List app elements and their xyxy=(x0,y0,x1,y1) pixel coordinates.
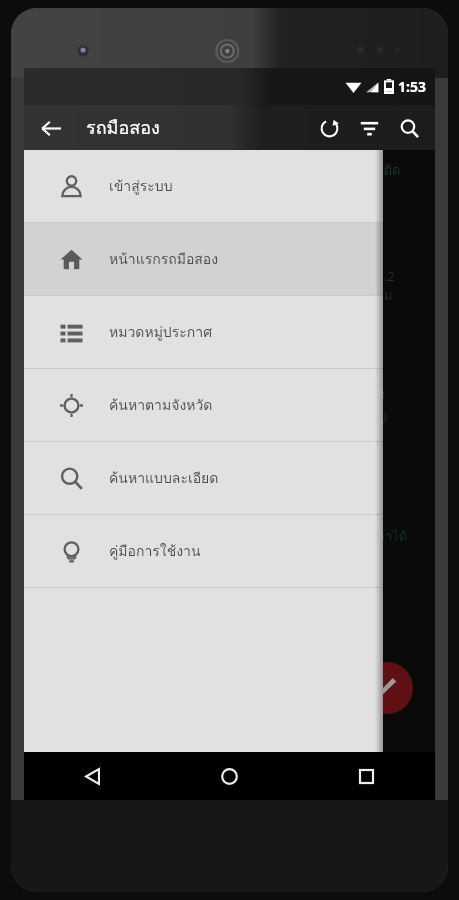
button[interactable]: Back xyxy=(24,752,161,800)
button[interactable]: Back xyxy=(30,107,72,149)
button[interactable]: คู่มือการใช้งาน xyxy=(24,515,383,587)
staticText: 1:53 xyxy=(398,77,426,96)
staticText: รถมือสอง xyxy=(86,113,160,142)
staticText: ข้าได้ xyxy=(376,526,408,547)
staticText: ค้นหาตามจังหวัด xyxy=(109,394,213,416)
staticText: 1.2 xyxy=(376,267,395,285)
button[interactable]: เข้าสู่ระบบ xyxy=(24,150,383,222)
button[interactable]: Refresh xyxy=(309,108,349,148)
staticText: อม xyxy=(376,285,393,306)
staticText: เข้าสู่ระบบ xyxy=(109,175,173,197)
button[interactable]: หมวดหมู่ประกาศ xyxy=(24,296,383,368)
button[interactable]: Recents xyxy=(298,752,435,800)
staticText: ที xyxy=(376,384,385,405)
button[interactable]: หน้าแรกรถมือสอง xyxy=(24,223,383,295)
staticText: ค้นหาแบบละเอียด xyxy=(109,467,219,489)
button[interactable]: Compose xyxy=(361,662,413,714)
button[interactable]: Filter xyxy=(349,108,389,148)
button[interactable]: ค้นหาแบบละเอียด xyxy=(24,442,383,514)
staticText: คู่มือการใช้งาน xyxy=(109,540,201,562)
button[interactable]: Home xyxy=(161,752,298,800)
staticText: ญ xyxy=(376,405,388,426)
staticText: ยติด xyxy=(376,160,401,181)
button[interactable]: Search xyxy=(389,108,429,148)
staticText: หน้าแรกรถมือสอง xyxy=(109,248,219,270)
button[interactable]: ค้นหาตามจังหวัด xyxy=(24,369,383,441)
staticText: หมวดหมู่ประกาศ xyxy=(109,321,213,343)
